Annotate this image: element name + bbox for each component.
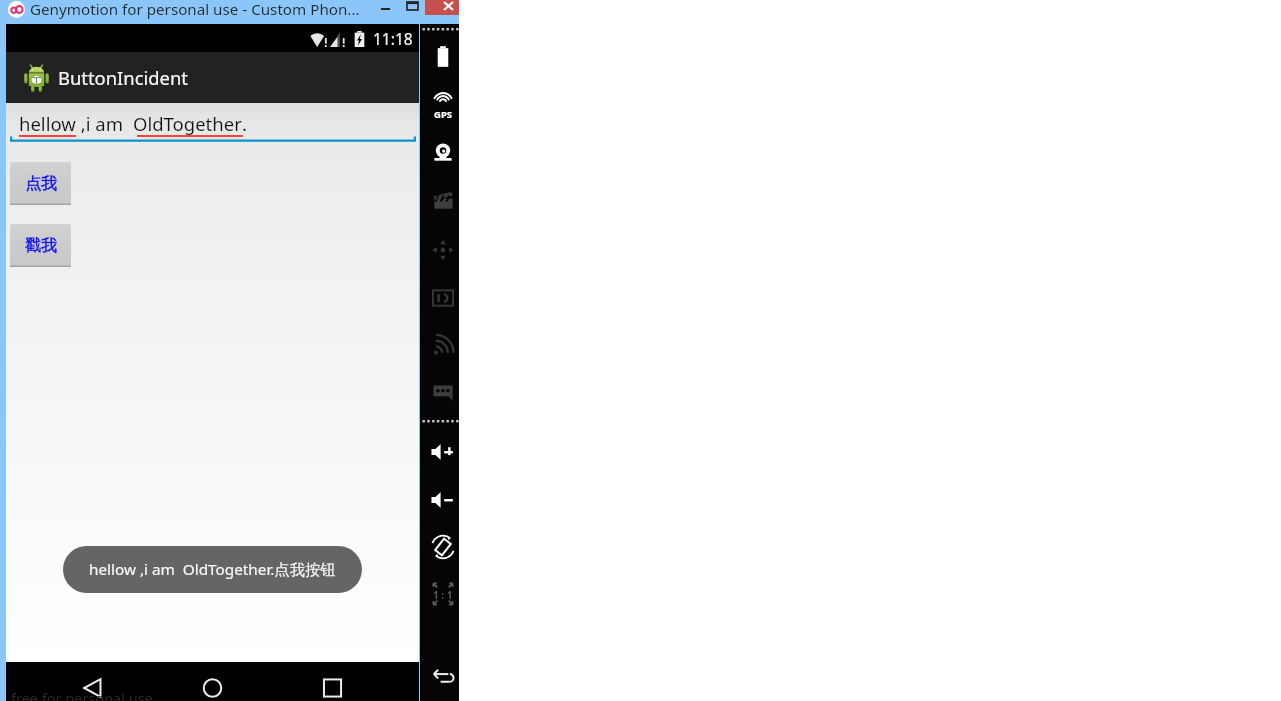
staticText: 点我 <box>25 174 57 194</box>
button[interactable]: Video <box>426 180 460 222</box>
button[interactable]: Rotate <box>426 526 460 568</box>
staticText: . <box>242 111 247 136</box>
button[interactable]: Minimize <box>371 0 399 15</box>
button[interactable]: Volume up <box>426 431 460 473</box>
button[interactable]: GPS <box>426 84 460 126</box>
button[interactable]: Joystick <box>426 229 460 271</box>
staticText: GPS <box>434 108 453 121</box>
button[interactable]: Back <box>426 655 460 697</box>
button[interactable]: Home <box>192 662 232 701</box>
button[interactable]: Close <box>425 0 459 15</box>
button[interactable]: Recents <box>312 662 352 701</box>
staticText: 11:18 <box>373 28 413 49</box>
button[interactable]: Maximize <box>399 0 425 15</box>
staticText: 戳我 <box>25 236 57 256</box>
button[interactable]: 点我 <box>10 162 71 205</box>
button[interactable]: Battery <box>426 36 460 78</box>
staticText: hellow ,i am OldTogether.点我按钮 <box>89 559 336 580</box>
button[interactable]: Volume down <box>426 479 460 521</box>
staticText: 1 : 1 <box>433 588 453 602</box>
staticText: free for personal use <box>11 688 153 701</box>
staticText: ,i am <box>76 111 133 136</box>
button[interactable]: Network <box>426 324 460 366</box>
button[interactable]: SMS <box>426 371 460 413</box>
button[interactable]: Scale 1 to 1 <box>426 573 460 615</box>
button[interactable]: Identifiers <box>426 277 460 319</box>
button[interactable]: 戳我 <box>10 224 71 267</box>
staticText: ButtonIncident <box>58 65 188 90</box>
staticText: OldTogether <box>133 111 242 136</box>
button[interactable]: Camera <box>426 132 460 174</box>
button[interactable]: Back <box>72 662 112 701</box>
staticText: Genymotion for personal use - Custom Pho… <box>30 0 360 20</box>
staticText: hellow <box>19 111 76 136</box>
